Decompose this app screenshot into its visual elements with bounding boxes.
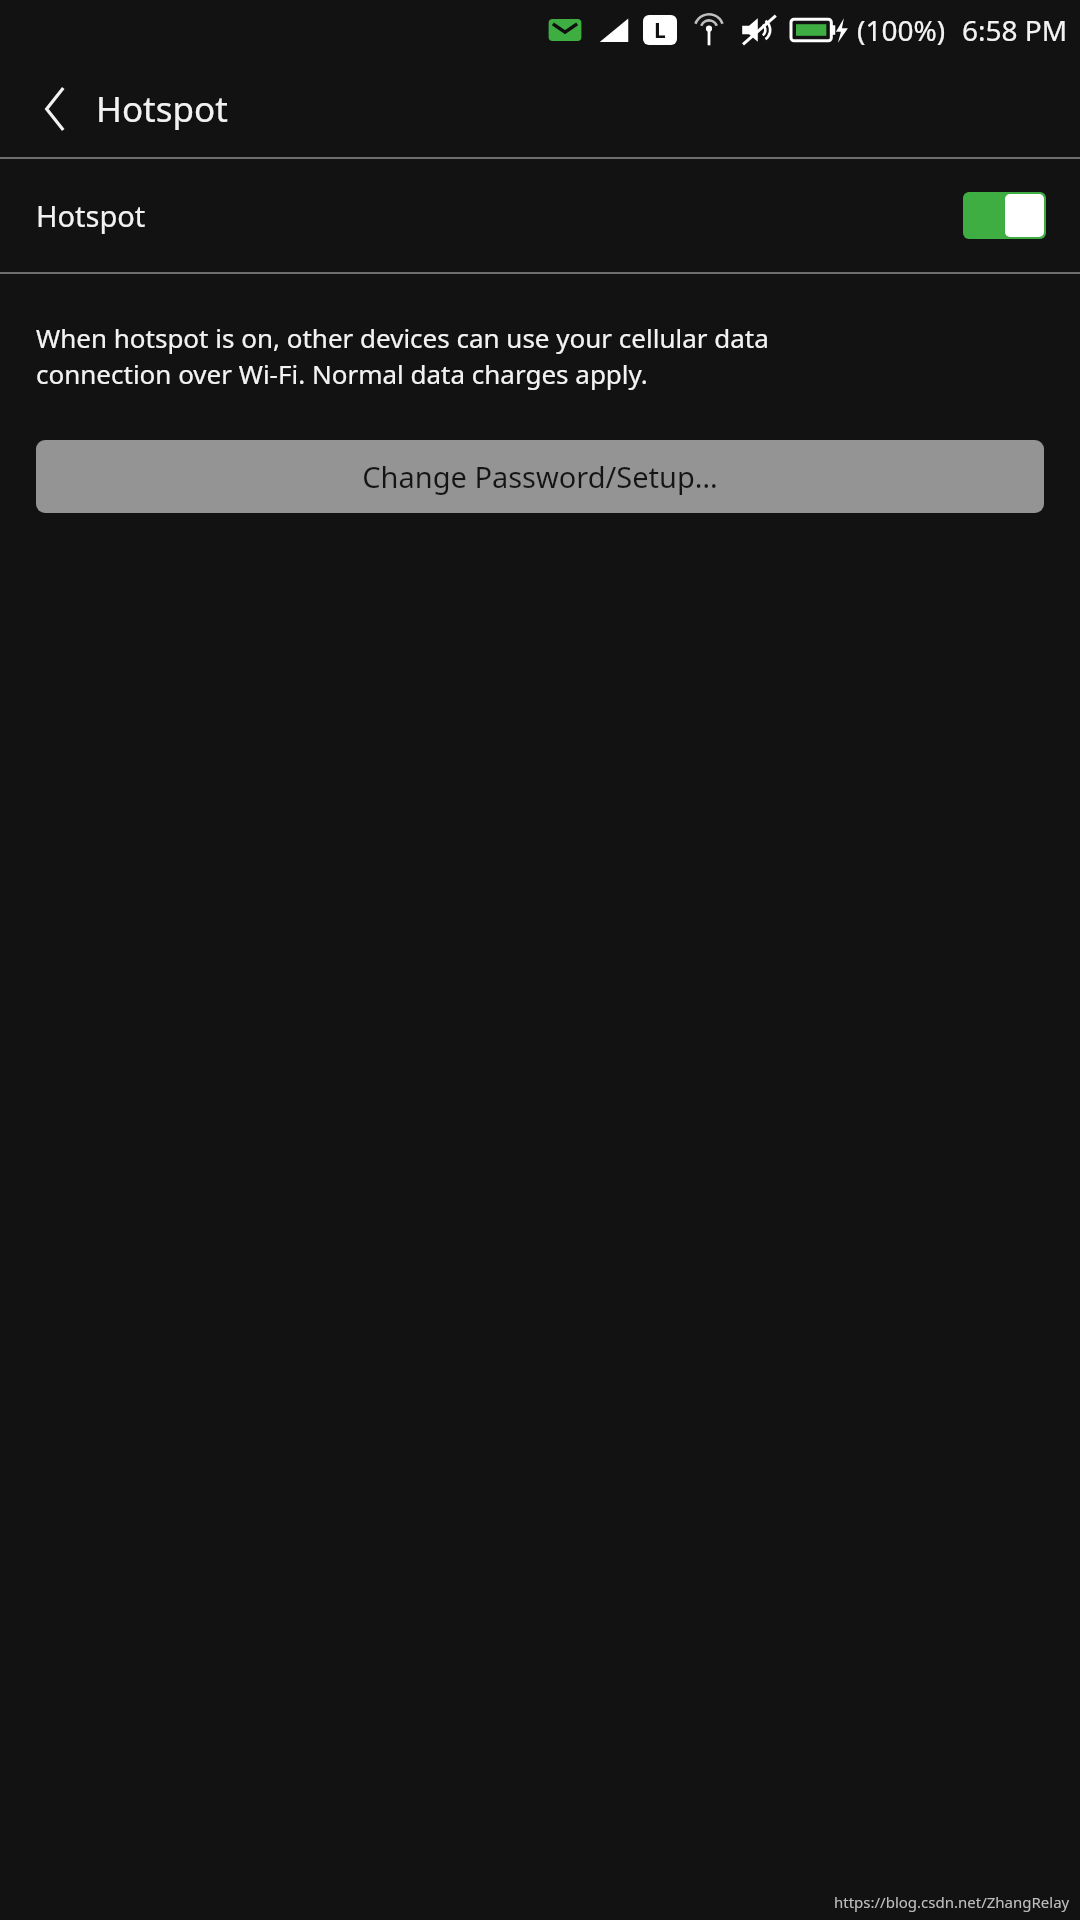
staticText: 6:58 PM [962, 11, 1068, 49]
staticText: Change Password/Setup… [362, 457, 718, 496]
staticText: https://blog.csdn.net/ZhangRelay [834, 1892, 1070, 1912]
staticText: Hotspot [36, 196, 146, 235]
button[interactable]: Back [34, 87, 78, 131]
staticText: When hotspot is on, other devices can us… [36, 320, 769, 392]
staticText: L [654, 16, 666, 45]
staticText: (100%) [857, 11, 946, 49]
staticText: Hotspot [96, 85, 228, 133]
button[interactable]: Change Password/Setup… [36, 440, 1044, 513]
button[interactable]: Hotspot toggle [963, 192, 1046, 239]
button[interactable]: Hotspot [0, 159, 1080, 272]
